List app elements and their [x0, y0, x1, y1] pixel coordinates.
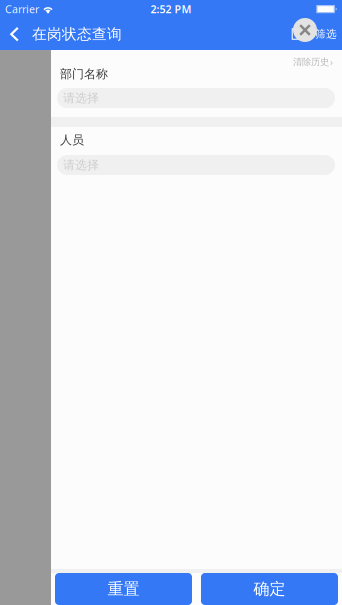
staticText: 人员 — [60, 133, 84, 147]
button[interactable]: 确定 — [201, 573, 338, 605]
staticText: 筛选 — [315, 27, 337, 40]
staticText: 在岗状态查询 — [32, 25, 122, 43]
staticText: 确定 — [253, 579, 285, 599]
staticText: 请选择 — [63, 158, 99, 172]
button[interactable]: 请选择 — [57, 88, 335, 108]
staticText: 清除历史 — [293, 56, 329, 68]
staticText: 部门名称 — [60, 67, 108, 81]
button[interactable]: 筛选 — [291, 18, 342, 50]
button[interactable]: 清除历史 — [293, 50, 342, 70]
button[interactable]: 请选择 — [57, 155, 335, 175]
staticText: 请选择 — [63, 91, 99, 105]
staticText: 重置 — [107, 579, 139, 599]
button[interactable]: Back — [0, 19, 28, 49]
staticText: › — [330, 56, 333, 68]
button[interactable]: Close — [293, 18, 317, 42]
staticText: 2:52 PM — [150, 2, 191, 16]
staticText: Carrier — [5, 2, 39, 16]
button[interactable]: 重置 — [55, 573, 192, 605]
